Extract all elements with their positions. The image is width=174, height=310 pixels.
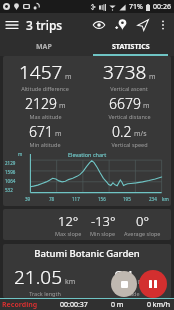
button[interactable]: Pause recording [139,270,167,298]
staticText: Recording [2,300,38,310]
button[interactable]: Open navigation drawer [0,13,24,37]
staticText: Vertical ascent [110,85,148,92]
staticText: m/s [134,129,147,139]
staticText: km [65,277,76,287]
staticText: km [162,196,169,202]
staticText: Altitude difference [21,85,69,92]
staticText: 117 [72,196,80,202]
staticText: 532 [5,187,13,193]
staticText: 2129 [25,94,57,113]
staticText: 0 km/h [147,300,171,310]
staticText: 1457 [19,59,63,85]
staticText: m [18,151,23,157]
staticText: Vertical distance [108,113,151,120]
staticText: Batumi Botanic Garden [3,247,171,260]
button[interactable]: 12° [3,209,171,240]
staticText: m [149,72,156,82]
staticText: 21.05 [14,264,63,290]
staticText: 195 [123,196,131,202]
staticText: 91 [114,264,136,290]
staticText: 1064 [5,178,16,184]
staticText: Average slope [124,230,161,237]
staticText: m [59,101,66,111]
button[interactable]: MAP [0,37,87,56]
staticText: 12° [58,212,79,230]
staticText: 0.2 [112,122,132,141]
staticText: MAP [36,42,52,52]
staticText: m [55,129,62,139]
staticText: Min altitude [29,141,61,148]
staticText: Altitude [119,290,140,297]
staticText: 71% [129,2,143,12]
staticText: m [138,277,145,287]
staticText: Max slope [55,230,82,237]
staticText: 6679 [109,94,141,113]
button[interactable]: Stop recording [111,271,137,297]
staticText: m [65,72,72,82]
staticText: Track length [29,290,61,297]
staticText: 1596 [5,169,16,175]
staticText: Elevation chart [68,151,107,158]
staticText: 78 [49,196,55,202]
staticText: -13° [91,212,116,230]
staticText: 39 [25,196,31,202]
staticText: 00:00:37 [60,300,88,310]
button[interactable]: Batumi Botanic Garden [3,244,171,298]
staticText: Max altitude [29,113,62,120]
staticText: STATISTICS [112,42,150,52]
staticText: 0 m [111,300,124,310]
staticText: Min slope [90,230,116,237]
button[interactable]: 1457 [3,56,171,206]
staticText: 234 [149,196,157,202]
staticText: 3738 [103,59,147,85]
button[interactable]: Show on map [88,14,110,36]
button[interactable]: Navigate [132,14,154,36]
staticText: 671 [29,122,53,141]
staticText: 00:26 [153,2,171,12]
staticText: 156 [98,196,106,202]
button[interactable]: Add waypoint [110,14,132,36]
staticText: m [143,101,150,111]
button[interactable]: More options [154,16,172,34]
staticText: 0° [136,212,149,230]
staticText: 3 trips [26,17,63,33]
button[interactable]: STATISTICS [87,37,174,56]
staticText: Vertical speed [111,141,148,148]
staticText: 2129 [5,160,16,166]
